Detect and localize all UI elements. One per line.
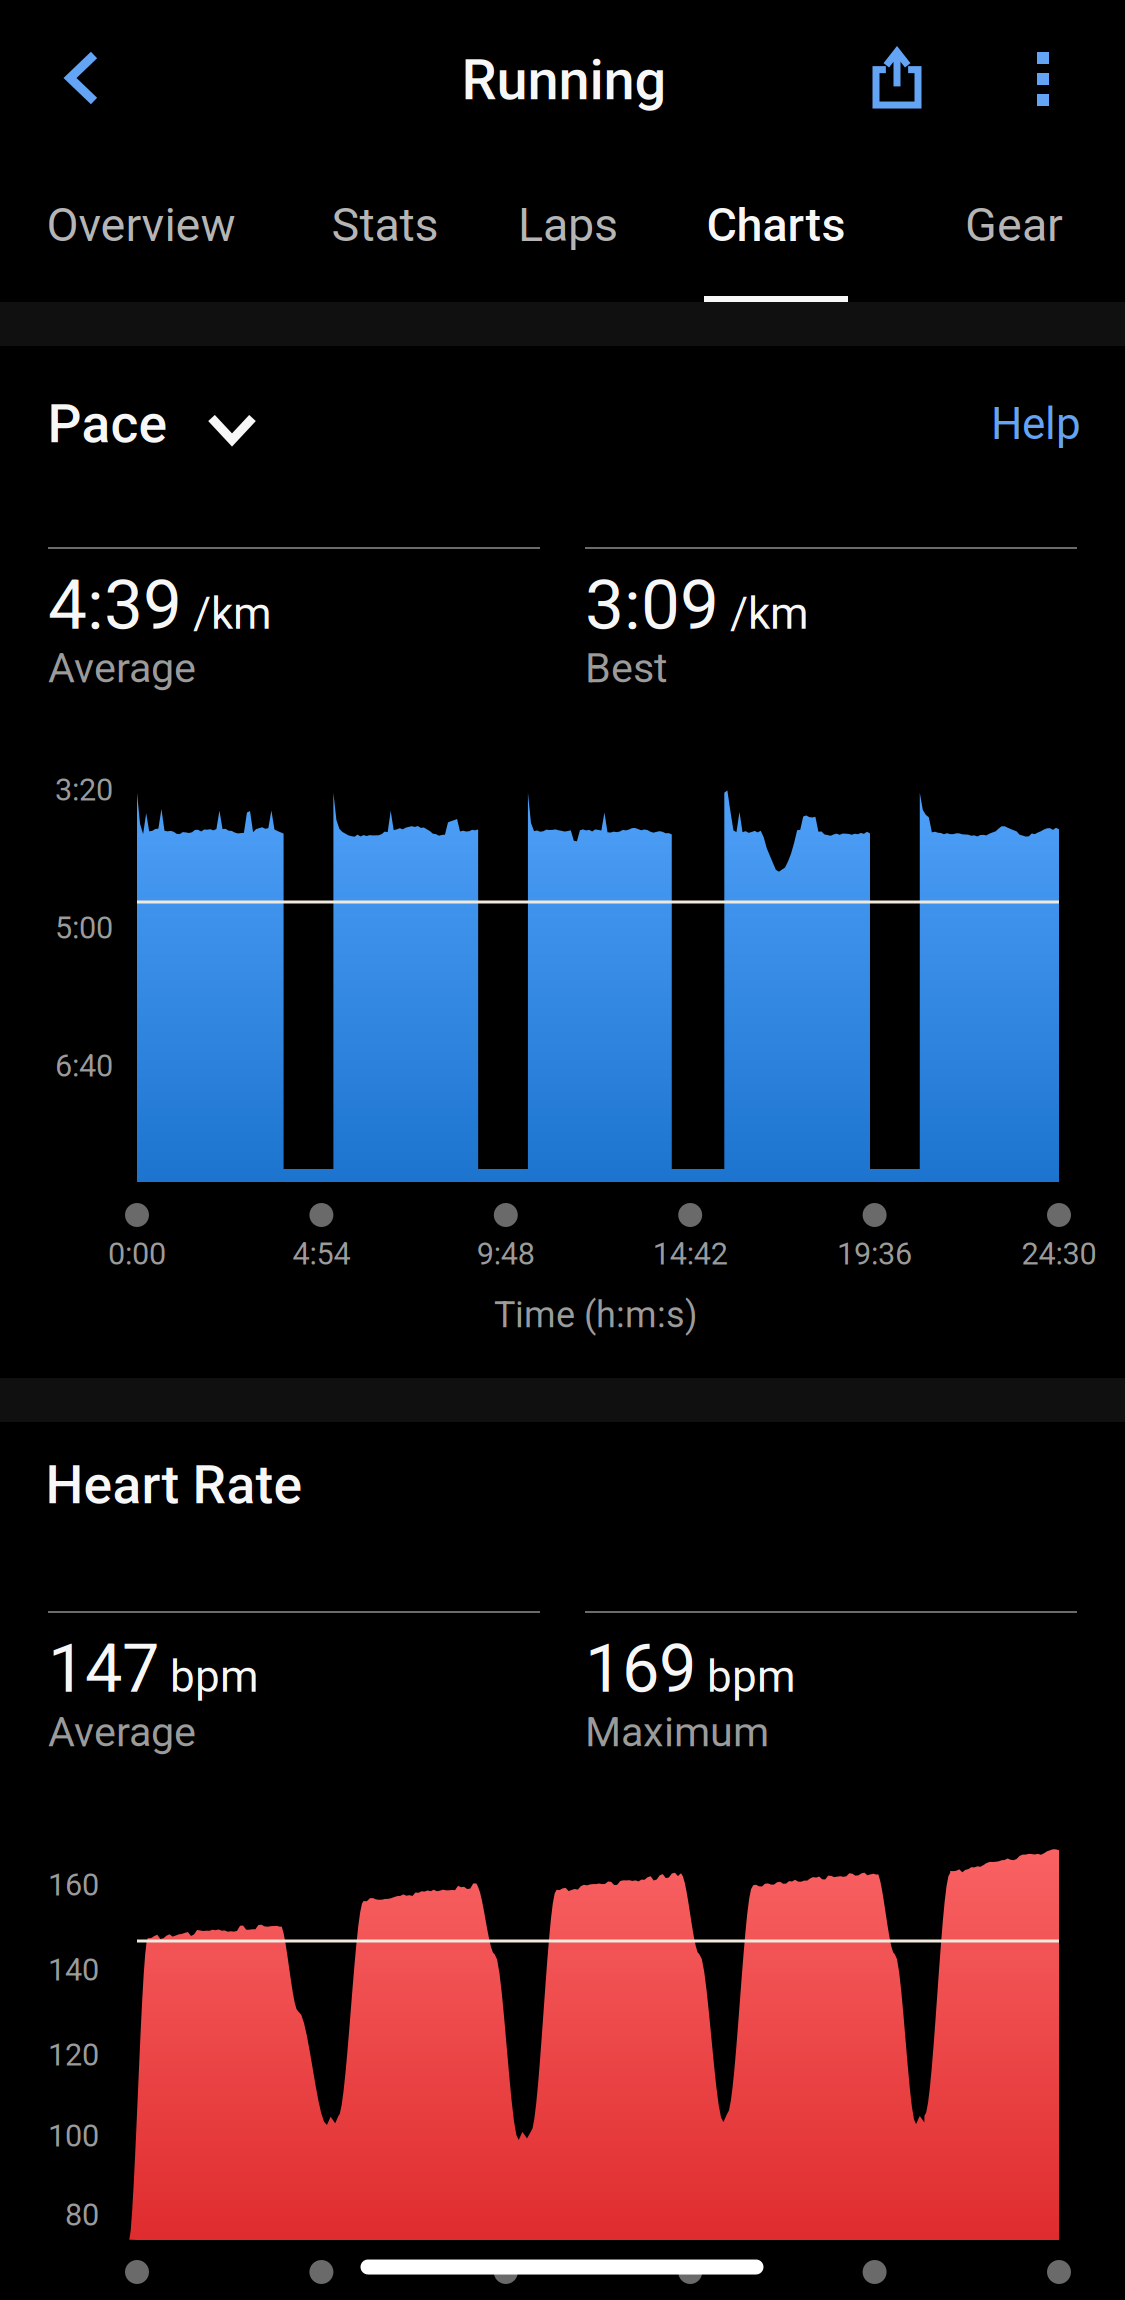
button[interactable]: Laps [458, 174, 678, 324]
button[interactable]: Stats [275, 174, 495, 324]
button[interactable]: Overview [31, 174, 251, 324]
staticText: Stats [331, 198, 438, 252]
staticText: /km [193, 588, 272, 639]
button[interactable]: Pace [47, 367, 266, 481]
staticText: Heart Rate [45, 1454, 302, 1516]
staticText: Running [461, 47, 666, 113]
staticText: Gear [965, 198, 1063, 252]
staticText: Best [585, 644, 668, 692]
staticText: 169 [585, 1630, 696, 1708]
button[interactable]: Back [17, 8, 147, 148]
staticText: bpm [170, 1651, 259, 1703]
staticText: 80 [65, 2197, 99, 2233]
staticText: Overview [46, 198, 235, 252]
button[interactable]: Help [973, 372, 1099, 476]
button[interactable]: Share [832, 8, 962, 148]
staticText: Time (h:m:s) [494, 1294, 698, 1336]
staticText: 6:40 [55, 1048, 113, 1084]
staticText: bpm [707, 1651, 796, 1703]
staticText: 160 [48, 1867, 99, 1903]
staticText: Average [48, 1708, 196, 1756]
staticText: 4:54 [292, 1236, 350, 1272]
staticText: 147 [48, 1630, 159, 1708]
staticText: 100 [48, 2118, 99, 2154]
staticText: Help [991, 398, 1081, 450]
staticText: 24:30 [1021, 1236, 1096, 1272]
staticText: 9:48 [477, 1236, 535, 1272]
staticText: 19:36 [837, 1236, 912, 1272]
button[interactable]: Gear [904, 174, 1124, 324]
staticText: 3:20 [55, 772, 113, 808]
staticText: Charts [706, 198, 845, 252]
staticText: 3:09 [585, 564, 719, 646]
staticText: 120 [48, 2037, 99, 2073]
staticText: 14:42 [653, 1236, 728, 1272]
staticText: 4:39 [48, 564, 182, 646]
staticText: 0:00 [108, 1236, 166, 1272]
staticText: Average [48, 644, 196, 692]
staticText: Laps [518, 198, 618, 252]
staticText: 140 [48, 1952, 99, 1988]
staticText: 5:00 [55, 910, 113, 946]
button[interactable]: Charts [666, 174, 886, 324]
button[interactable]: More options [988, 9, 1098, 149]
staticText: /km [730, 588, 809, 639]
staticText: Maximum [585, 1708, 769, 1756]
staticText: Pace [47, 393, 167, 455]
